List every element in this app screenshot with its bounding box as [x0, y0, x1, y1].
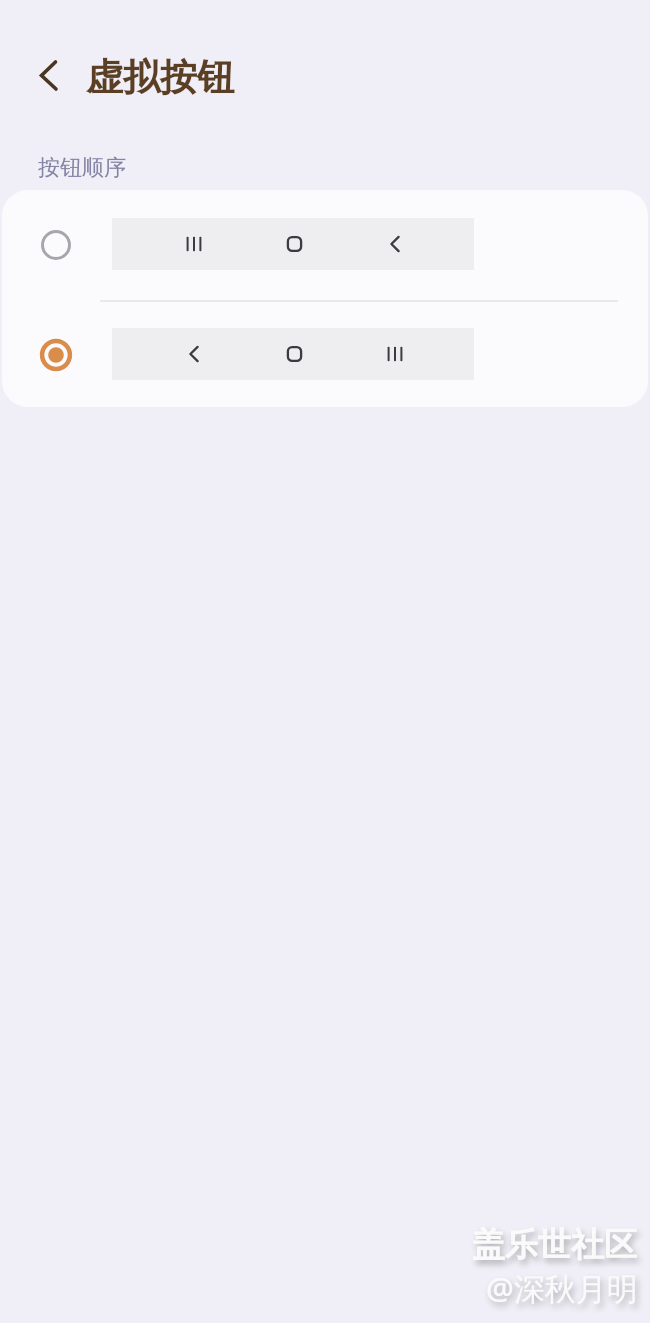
staticText: 按钮顺序 — [38, 154, 126, 182]
button[interactable] — [28, 56, 68, 96]
button[interactable] — [2, 301, 648, 407]
button[interactable] — [2, 190, 648, 300]
staticText: @深秋月明 — [486, 1267, 638, 1309]
staticText: 虚拟按钮 — [86, 54, 234, 101]
staticText: 盖乐世社区 — [472, 1224, 637, 1266]
